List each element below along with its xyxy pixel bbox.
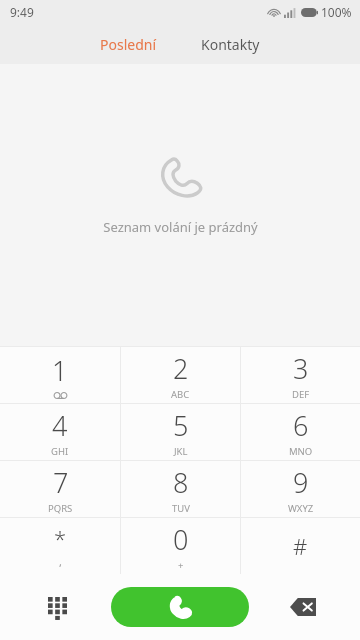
button[interactable]: 8 bbox=[121, 461, 240, 517]
button[interactable]: 0 bbox=[121, 518, 240, 574]
button[interactable]: 1 bbox=[0, 347, 120, 403]
staticText: 4 bbox=[52, 407, 68, 444]
staticText: GHI bbox=[51, 445, 69, 458]
button[interactable]: Dialpad bbox=[4, 574, 111, 640]
button[interactable]: 2 bbox=[121, 347, 240, 403]
staticText: 5 bbox=[173, 407, 189, 444]
staticText: 3 bbox=[293, 350, 309, 387]
staticText: # bbox=[293, 531, 308, 561]
button[interactable]: 5 bbox=[121, 404, 240, 460]
button[interactable]: 4 bbox=[0, 404, 120, 460]
staticText: WXYZ bbox=[288, 502, 314, 515]
staticText: Poslední bbox=[100, 35, 157, 54]
staticText: 9:49 bbox=[10, 4, 34, 20]
staticText: PQRS bbox=[48, 502, 73, 515]
staticText: JKL bbox=[174, 445, 188, 458]
button[interactable]: 6 bbox=[241, 404, 360, 460]
staticText: 1 bbox=[52, 352, 68, 389]
staticText: MNO bbox=[289, 445, 313, 458]
staticText: ABC bbox=[171, 388, 190, 401]
staticText: TUV bbox=[172, 502, 190, 515]
staticText: 2 bbox=[173, 350, 189, 387]
staticText: 7 bbox=[53, 464, 69, 501]
button[interactable]: 3 bbox=[241, 347, 360, 403]
staticText: + bbox=[178, 559, 184, 572]
button[interactable]: Call bbox=[111, 587, 249, 627]
button[interactable]: Kontakty bbox=[187, 29, 274, 60]
staticText: Kontakty bbox=[201, 35, 260, 54]
staticText: , bbox=[59, 554, 62, 569]
staticText: 9 bbox=[293, 464, 309, 501]
staticText: 6 bbox=[293, 407, 309, 444]
button[interactable]: Backspace bbox=[249, 574, 356, 640]
staticText: 100% bbox=[321, 4, 352, 20]
staticText: * bbox=[54, 523, 67, 553]
button[interactable]: 9 bbox=[241, 461, 360, 517]
button[interactable]: Poslední bbox=[86, 29, 171, 60]
button[interactable]: 7 bbox=[0, 461, 120, 517]
staticText: DEF bbox=[292, 388, 310, 401]
staticText: 8 bbox=[173, 464, 189, 501]
button[interactable]: # bbox=[241, 518, 360, 574]
button[interactable]: * bbox=[0, 518, 120, 574]
staticText: 0 bbox=[173, 521, 189, 558]
staticText: Seznam volání je prázdný bbox=[103, 218, 258, 236]
